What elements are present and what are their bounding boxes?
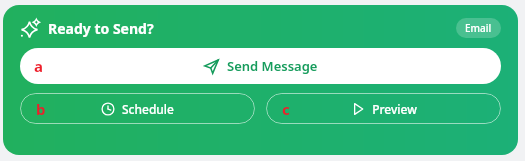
staticText: c [282, 99, 290, 119]
button[interactable]: Schedule [20, 93, 255, 124]
staticText: Email [465, 21, 492, 35]
staticText: b [36, 99, 46, 119]
staticText: Preview [372, 101, 417, 117]
staticText: Ready to Send? [48, 19, 154, 38]
staticText: Schedule [122, 101, 174, 117]
staticText: Send Message [227, 57, 318, 75]
button[interactable]: Email [456, 18, 501, 38]
staticText: a [34, 56, 43, 76]
button[interactable]: Preview [266, 93, 501, 124]
button[interactable]: Send Message [20, 48, 501, 84]
